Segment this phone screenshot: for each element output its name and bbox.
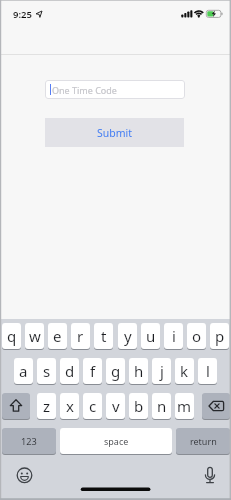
staticText: v	[112, 396, 120, 416]
button[interactable]: return	[176, 428, 230, 454]
button[interactable]: o	[187, 323, 206, 349]
button[interactable]: c	[83, 393, 102, 419]
staticText: g	[111, 361, 121, 381]
staticText: c	[89, 396, 97, 416]
button[interactable]: Submit	[45, 118, 184, 147]
staticText: h	[134, 361, 144, 381]
staticText: y	[124, 326, 132, 346]
staticText: s	[43, 361, 51, 381]
staticText: w	[29, 326, 41, 346]
button[interactable]: u	[141, 323, 160, 349]
button[interactable]	[202, 393, 230, 419]
button[interactable]: w	[25, 323, 44, 349]
staticText: n	[157, 396, 167, 416]
staticText: k	[180, 361, 189, 381]
button[interactable]: space	[60, 428, 172, 454]
staticText: 9:25	[13, 8, 32, 21]
staticText: o	[192, 326, 202, 346]
staticText: p	[215, 326, 225, 346]
staticText: i	[172, 326, 176, 346]
staticText: u	[146, 326, 156, 346]
button[interactable]: d	[60, 358, 79, 384]
staticText: r	[77, 326, 84, 346]
staticText: space	[104, 435, 129, 447]
button[interactable]: h	[129, 358, 148, 384]
staticText: m	[177, 396, 192, 416]
button[interactable]: e	[48, 323, 67, 349]
staticText: d	[65, 361, 75, 381]
staticText: j	[160, 361, 164, 381]
staticText: return	[190, 435, 217, 447]
staticText: x	[66, 396, 74, 416]
staticText: One Time Code	[52, 84, 117, 96]
button[interactable]	[13, 464, 36, 487]
button[interactable]: r	[71, 323, 90, 349]
button[interactable]: t	[94, 323, 113, 349]
button[interactable]: 123	[2, 428, 56, 454]
button[interactable]: s	[37, 358, 56, 384]
button[interactable]: v	[106, 393, 125, 419]
staticText: t	[101, 326, 107, 346]
staticText: 123	[21, 435, 37, 448]
button[interactable]: l	[198, 358, 217, 384]
button[interactable]: a	[14, 358, 33, 384]
staticText: e	[53, 326, 62, 346]
button[interactable]: f	[83, 358, 102, 384]
button[interactable]: x	[60, 393, 79, 419]
button[interactable]: g	[106, 358, 125, 384]
button[interactable]: One Time Code	[45, 80, 185, 99]
button[interactable]: k	[175, 358, 194, 384]
staticText: q	[7, 326, 17, 346]
staticText: f	[90, 361, 96, 381]
button[interactable]: y	[118, 323, 137, 349]
button[interactable]	[199, 462, 221, 486]
button[interactable]: p	[210, 323, 229, 349]
button[interactable]: j	[152, 358, 171, 384]
button[interactable]	[2, 393, 30, 419]
staticText: Submit	[97, 126, 133, 140]
button[interactable]: z	[37, 393, 56, 419]
button[interactable]: i	[164, 323, 183, 349]
button[interactable]: q	[2, 323, 21, 349]
button[interactable]: m	[175, 393, 194, 419]
staticText: b	[134, 396, 144, 416]
staticText: a	[19, 361, 28, 381]
button[interactable]: b	[129, 393, 148, 419]
button[interactable]: n	[152, 393, 171, 419]
staticText: l	[206, 361, 210, 381]
staticText: z	[43, 396, 51, 416]
